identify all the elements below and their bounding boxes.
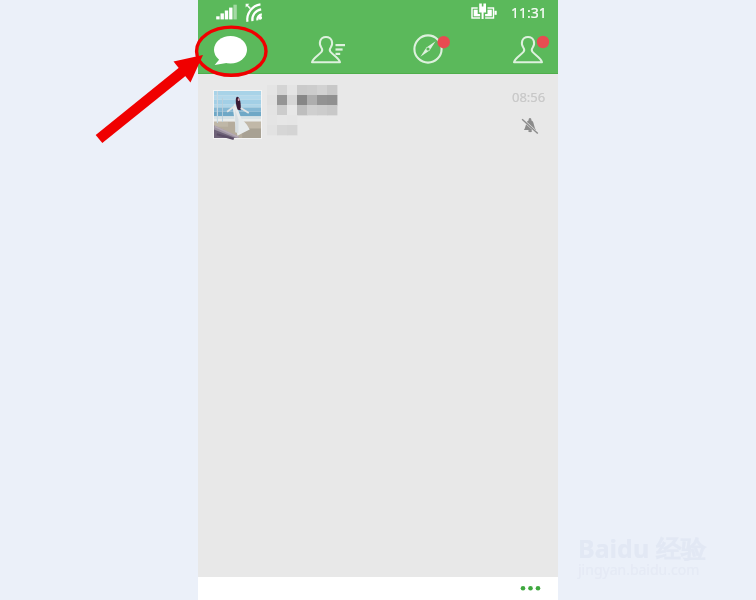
button[interactable]: Me	[478, 24, 558, 74]
button[interactable]: Contacts	[278, 24, 378, 74]
button[interactable]: More	[198, 577, 558, 600]
button[interactable]: Discover	[378, 24, 478, 74]
button[interactable]: 08:56	[198, 74, 558, 139]
staticText: 11:31	[511, 3, 547, 22]
staticText: 08:56	[512, 88, 546, 106]
button[interactable]: Chats	[198, 24, 278, 74]
